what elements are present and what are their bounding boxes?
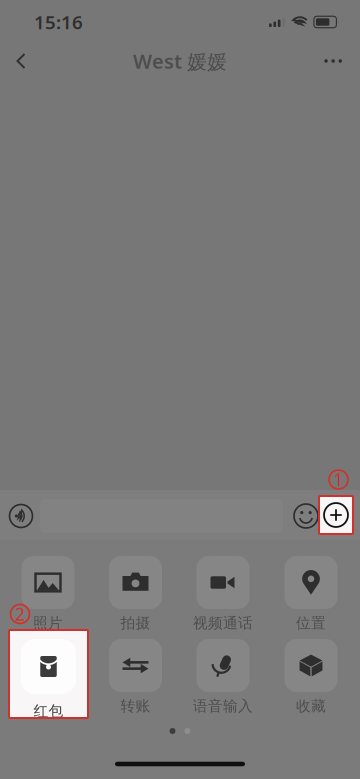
staticText: West 媛媛 <box>133 48 227 74</box>
staticText: 收藏 <box>296 697 326 715</box>
staticText: 语音输入 <box>193 697 253 715</box>
button[interactable]: 位置 <box>268 556 354 644</box>
button[interactable]: 语音输入 <box>180 639 266 727</box>
staticText: 位置 <box>296 614 326 632</box>
staticText: 红包 <box>33 702 63 720</box>
staticText: 1 <box>333 468 343 491</box>
button[interactable]: 收藏 <box>268 639 354 727</box>
button[interactable]: Back <box>4 44 38 78</box>
staticText: 视频通话 <box>193 614 253 632</box>
button[interactable]: More actions <box>319 496 353 534</box>
button[interactable]: 照片 <box>5 556 91 644</box>
button[interactable]: Voice message <box>2 497 39 534</box>
button[interactable]: 视频通话 <box>180 556 266 644</box>
staticText: 拍摄 <box>120 614 150 632</box>
button[interactable]: Emoji <box>288 498 324 534</box>
button[interactable]: 拍摄 <box>92 556 178 644</box>
button[interactable]: 转账 <box>92 639 178 727</box>
staticText: 2 <box>15 602 25 625</box>
staticText: 照片 <box>33 614 63 632</box>
staticText: 转账 <box>120 697 150 715</box>
button[interactable]: 红包 <box>9 630 88 718</box>
staticText: 15:16 <box>34 10 83 34</box>
button[interactable]: More <box>310 46 356 76</box>
